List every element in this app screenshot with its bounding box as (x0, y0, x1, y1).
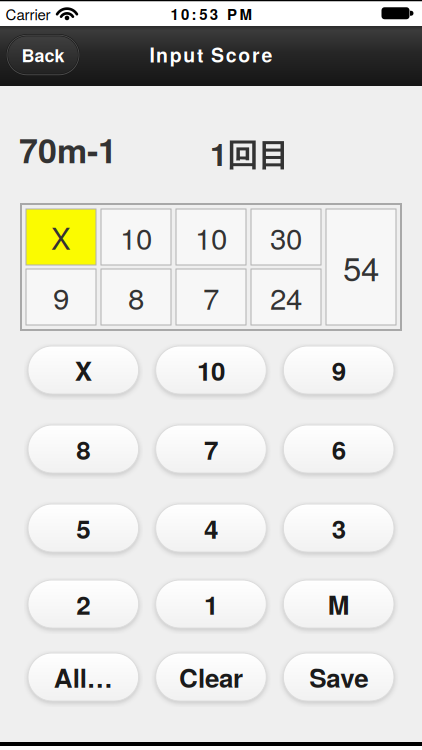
button[interactable]: 8 (28, 425, 139, 473)
staticText: 1 (204, 585, 218, 623)
button[interactable]: 5 (28, 504, 139, 552)
button[interactable]: Clear (156, 653, 266, 701)
button[interactable]: 10 (156, 346, 266, 394)
button[interactable]: 9 (283, 346, 394, 394)
staticText: 1回目 (210, 131, 289, 175)
staticText: 9 (332, 351, 346, 389)
staticText: 8 (76, 430, 90, 468)
staticText: X (75, 351, 92, 389)
staticText: 4 (204, 509, 218, 547)
button[interactable]: X (28, 346, 139, 394)
button[interactable]: 7 (156, 425, 266, 473)
staticText: 8 (128, 276, 144, 318)
staticText: 7 (203, 276, 219, 318)
button[interactable]: 4 (156, 504, 266, 552)
staticText: All… (54, 658, 113, 696)
button[interactable]: 3 (283, 504, 394, 552)
staticText: 2 (76, 585, 90, 623)
button[interactable]: 6 (283, 425, 394, 473)
staticText: 70m-1 (19, 125, 117, 174)
staticText: Input Score (149, 40, 272, 68)
staticText: 24 (270, 276, 302, 318)
staticText: 7 (204, 430, 218, 468)
staticText: 10:53 PM (170, 3, 252, 24)
staticText: 54 (343, 243, 379, 291)
staticText: Clear (179, 658, 243, 696)
staticText: 6 (332, 430, 346, 468)
staticText: 10 (195, 216, 227, 258)
staticText: 10 (197, 351, 225, 389)
button[interactable]: 2 (28, 580, 139, 628)
button[interactable]: 1 (156, 580, 266, 628)
staticText: M (328, 585, 350, 623)
button[interactable]: Save (283, 653, 394, 701)
staticText: 3 (332, 509, 346, 547)
staticText: X (51, 216, 71, 258)
staticText: 10 (120, 216, 152, 258)
staticText: Back (21, 42, 64, 68)
button[interactable]: All… (28, 653, 139, 701)
staticText: Carrier (5, 3, 50, 24)
button[interactable]: Back (7, 36, 79, 76)
staticText: 9 (53, 276, 69, 318)
staticText: 30 (270, 216, 302, 258)
button[interactable]: M (283, 580, 394, 628)
staticText: 5 (76, 509, 90, 547)
staticText: Save (309, 658, 368, 696)
